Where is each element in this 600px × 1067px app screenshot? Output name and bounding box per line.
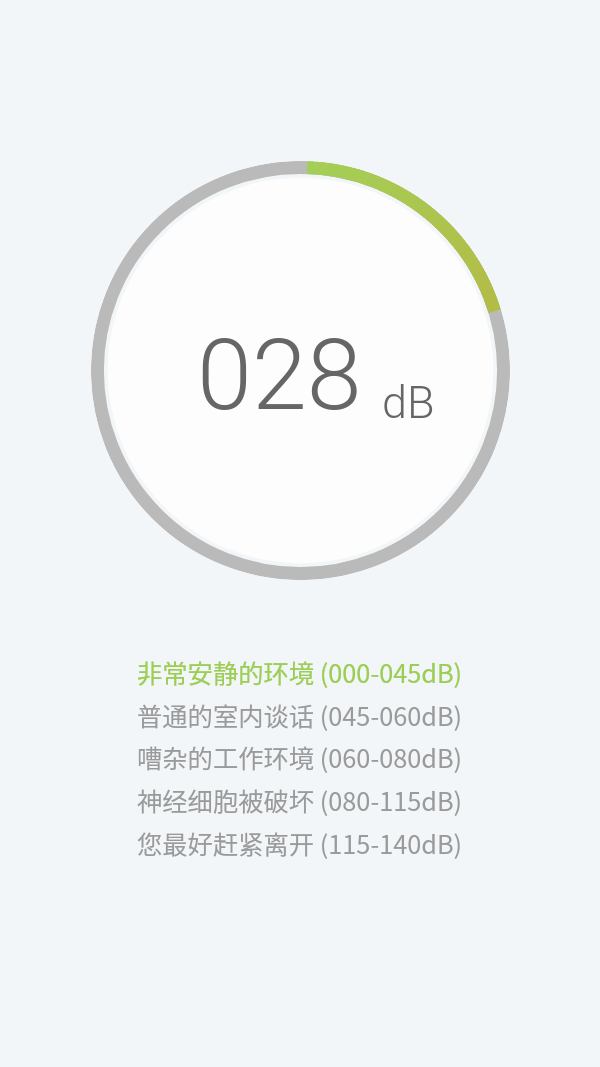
button[interactable]: 神经细胞被破坏 (080-115dB) [0, 782, 600, 816]
staticText: 非常安静的环境 (000-045dB) [137, 654, 463, 688]
staticText: 嘈杂的工作环境 (060-080dB) [137, 739, 463, 773]
button[interactable]: Noise level gauge, 028 dB [91, 161, 510, 580]
staticText: dB [382, 376, 435, 429]
staticText: 神经细胞被破坏 (080-115dB) [137, 782, 463, 816]
button[interactable]: 嘈杂的工作环境 (060-080dB) [0, 739, 600, 773]
staticText: 普通的室内谈话 (045-060dB) [137, 697, 463, 731]
button[interactable]: 非常安静的环境 (000-045dB) [0, 654, 600, 688]
button[interactable]: 普通的室内谈话 (045-060dB) [0, 697, 600, 731]
staticText: 028 [197, 317, 362, 433]
button[interactable]: 您最好赶紧离开 (115-140dB) [0, 825, 600, 859]
staticText: 您最好赶紧离开 (115-140dB) [137, 825, 463, 859]
